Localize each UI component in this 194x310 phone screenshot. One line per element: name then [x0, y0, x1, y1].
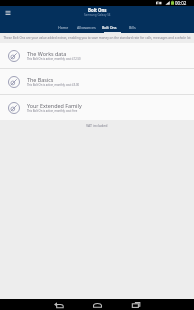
- button[interactable]: Recent apps: [126, 299, 146, 310]
- staticText: Allowances: [77, 25, 96, 30]
- staticText: The Works data: [27, 50, 67, 57]
- staticText: Your Extended Family: [27, 102, 82, 109]
- staticText: Bolt Ons: [102, 25, 117, 30]
- button[interactable]: Allowances: [75, 22, 98, 33]
- staticText: This Bolt On is active, monthly cost: £5…: [27, 83, 80, 87]
- button[interactable]: The Works data: [0, 43, 194, 68]
- button[interactable]: The Basics: [0, 69, 194, 94]
- staticText: This Bolt On is active, monthly cost: £1…: [27, 57, 81, 61]
- staticText: These Bolt Ons are your value added extr…: [2, 36, 192, 40]
- staticText: Bills: [129, 25, 136, 30]
- button[interactable]: Back: [48, 299, 68, 310]
- staticText: 00:02: [175, 0, 187, 6]
- staticText: Bolt Ons: [88, 7, 107, 13]
- button[interactable]: Open navigation drawer: [1, 6, 15, 22]
- button[interactable]: Bolt Ons: [98, 22, 121, 33]
- staticText: Samsung Galaxy S4: [84, 13, 111, 17]
- staticText: The Basics: [27, 76, 54, 83]
- button[interactable]: Bills: [121, 22, 144, 33]
- button[interactable]: Home: [52, 22, 75, 33]
- staticText: Home: [58, 25, 69, 30]
- staticText: This Bolt On is active, monthly cost: fr…: [27, 109, 78, 113]
- button[interactable]: Home: [87, 299, 107, 310]
- button[interactable]: Your Extended Family: [0, 95, 194, 120]
- staticText: VAT included: [86, 123, 108, 128]
